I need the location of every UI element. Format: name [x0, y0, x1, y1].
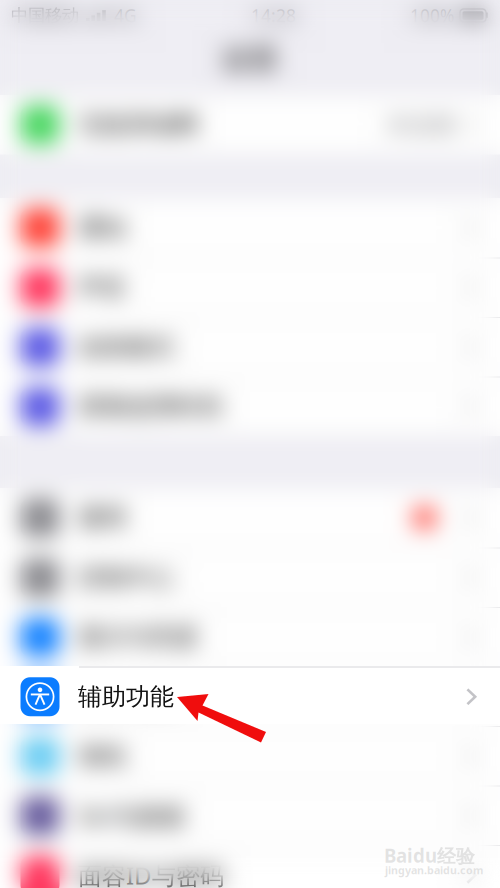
button[interactable]: 通知: [0, 198, 500, 257]
button[interactable]: 无线局域网: [0, 95, 500, 154]
button[interactable]: 通用: [0, 488, 500, 547]
button[interactable]: 显示与亮度: [0, 607, 500, 667]
staticText: 辅助功能: [78, 682, 174, 711]
staticText: 声音: [78, 273, 126, 302]
staticText: 设置: [222, 42, 278, 77]
staticText: 勿扰模式: [78, 332, 174, 362]
staticText: jingyan.baidu.com: [385, 863, 483, 877]
staticText: 屏幕使用时间: [78, 392, 222, 421]
staticText: 通用: [78, 503, 126, 532]
staticText: Siri与搜索: [78, 800, 185, 832]
staticText: Baidu经验: [384, 843, 475, 868]
button[interactable]: 屏幕使用时间: [0, 377, 500, 436]
button[interactable]: 辅助功能: [0, 667, 500, 726]
staticText: 面容ID与密码: [78, 859, 224, 888]
staticText: 中国移动: [11, 5, 79, 26]
button[interactable]: 勿扰模式: [0, 317, 500, 377]
staticText: 1: [419, 506, 429, 529]
staticText: 通知: [78, 213, 126, 242]
staticText: 无线局域网: [78, 110, 198, 139]
staticText: 显示与亮度: [78, 622, 198, 652]
button[interactable]: 控制中心: [0, 548, 500, 607]
staticText: 未连接: [387, 111, 456, 139]
staticText: 14:28: [251, 4, 296, 27]
staticText: 墙纸: [78, 741, 126, 771]
staticText: 100%: [410, 4, 454, 27]
button[interactable]: 面容ID与密码: [0, 845, 500, 888]
button[interactable]: 声音: [0, 258, 500, 317]
staticText: 4G: [114, 4, 137, 27]
staticText: 控制中心: [78, 563, 174, 592]
button[interactable]: 墙纸: [0, 726, 500, 786]
button[interactable]: Siri与搜索: [0, 786, 500, 845]
